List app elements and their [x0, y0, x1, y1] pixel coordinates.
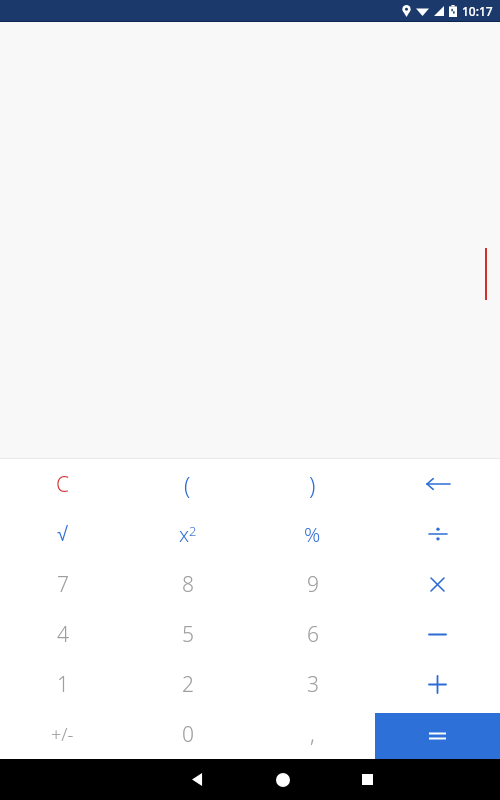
button[interactable]: 7 [0, 559, 125, 609]
button[interactable]: Multiply [375, 559, 500, 609]
button[interactable]: Recents [325, 759, 410, 800]
button[interactable]: 5 [125, 609, 250, 659]
staticText: 3 [307, 670, 319, 699]
button[interactable]: 8 [125, 559, 250, 609]
button[interactable]: 6 [250, 609, 375, 659]
staticText: 9 [307, 570, 319, 599]
staticText: 1 [57, 670, 69, 699]
button[interactable]: 0 [125, 709, 250, 759]
button[interactable]: √ [0, 509, 125, 559]
staticText: , [310, 720, 315, 749]
button[interactable]: 4 [0, 609, 125, 659]
staticText: 10:17 [462, 3, 493, 19]
staticText: 6 [307, 620, 319, 649]
button[interactable]: 1 [0, 659, 125, 709]
staticText: % [304, 521, 321, 548]
button[interactable]: 9 [250, 559, 375, 609]
staticText: 4 [57, 620, 69, 649]
button[interactable]: Plus [375, 659, 500, 709]
staticText: √ [57, 523, 68, 545]
button[interactable]: ) [250, 459, 375, 509]
button[interactable]: Home [240, 759, 325, 800]
button[interactable]: C [0, 459, 125, 509]
button[interactable]: % [250, 509, 375, 559]
staticText: 0 [182, 720, 194, 749]
button[interactable]: 3 [250, 659, 375, 709]
staticText: ) [309, 469, 316, 500]
staticText: x2 [179, 521, 197, 548]
staticText: 5 [182, 620, 194, 649]
staticText: 8 [182, 570, 194, 599]
staticText: C [56, 470, 70, 499]
button[interactable]: ( [125, 459, 250, 509]
staticText: +/- [51, 722, 74, 747]
button[interactable]: Backspace [375, 459, 500, 509]
button[interactable]: Minus [375, 609, 500, 659]
staticText: ( [184, 469, 191, 500]
staticText: 2 [182, 670, 194, 699]
staticText: 7 [57, 570, 69, 599]
button[interactable]: Back [155, 759, 240, 800]
button[interactable]: Divide [375, 509, 500, 559]
button[interactable]: +/- [0, 709, 125, 759]
button[interactable]: x2 [125, 509, 250, 559]
button[interactable]: 2 [125, 659, 250, 709]
button[interactable]: Equals [375, 713, 500, 759]
